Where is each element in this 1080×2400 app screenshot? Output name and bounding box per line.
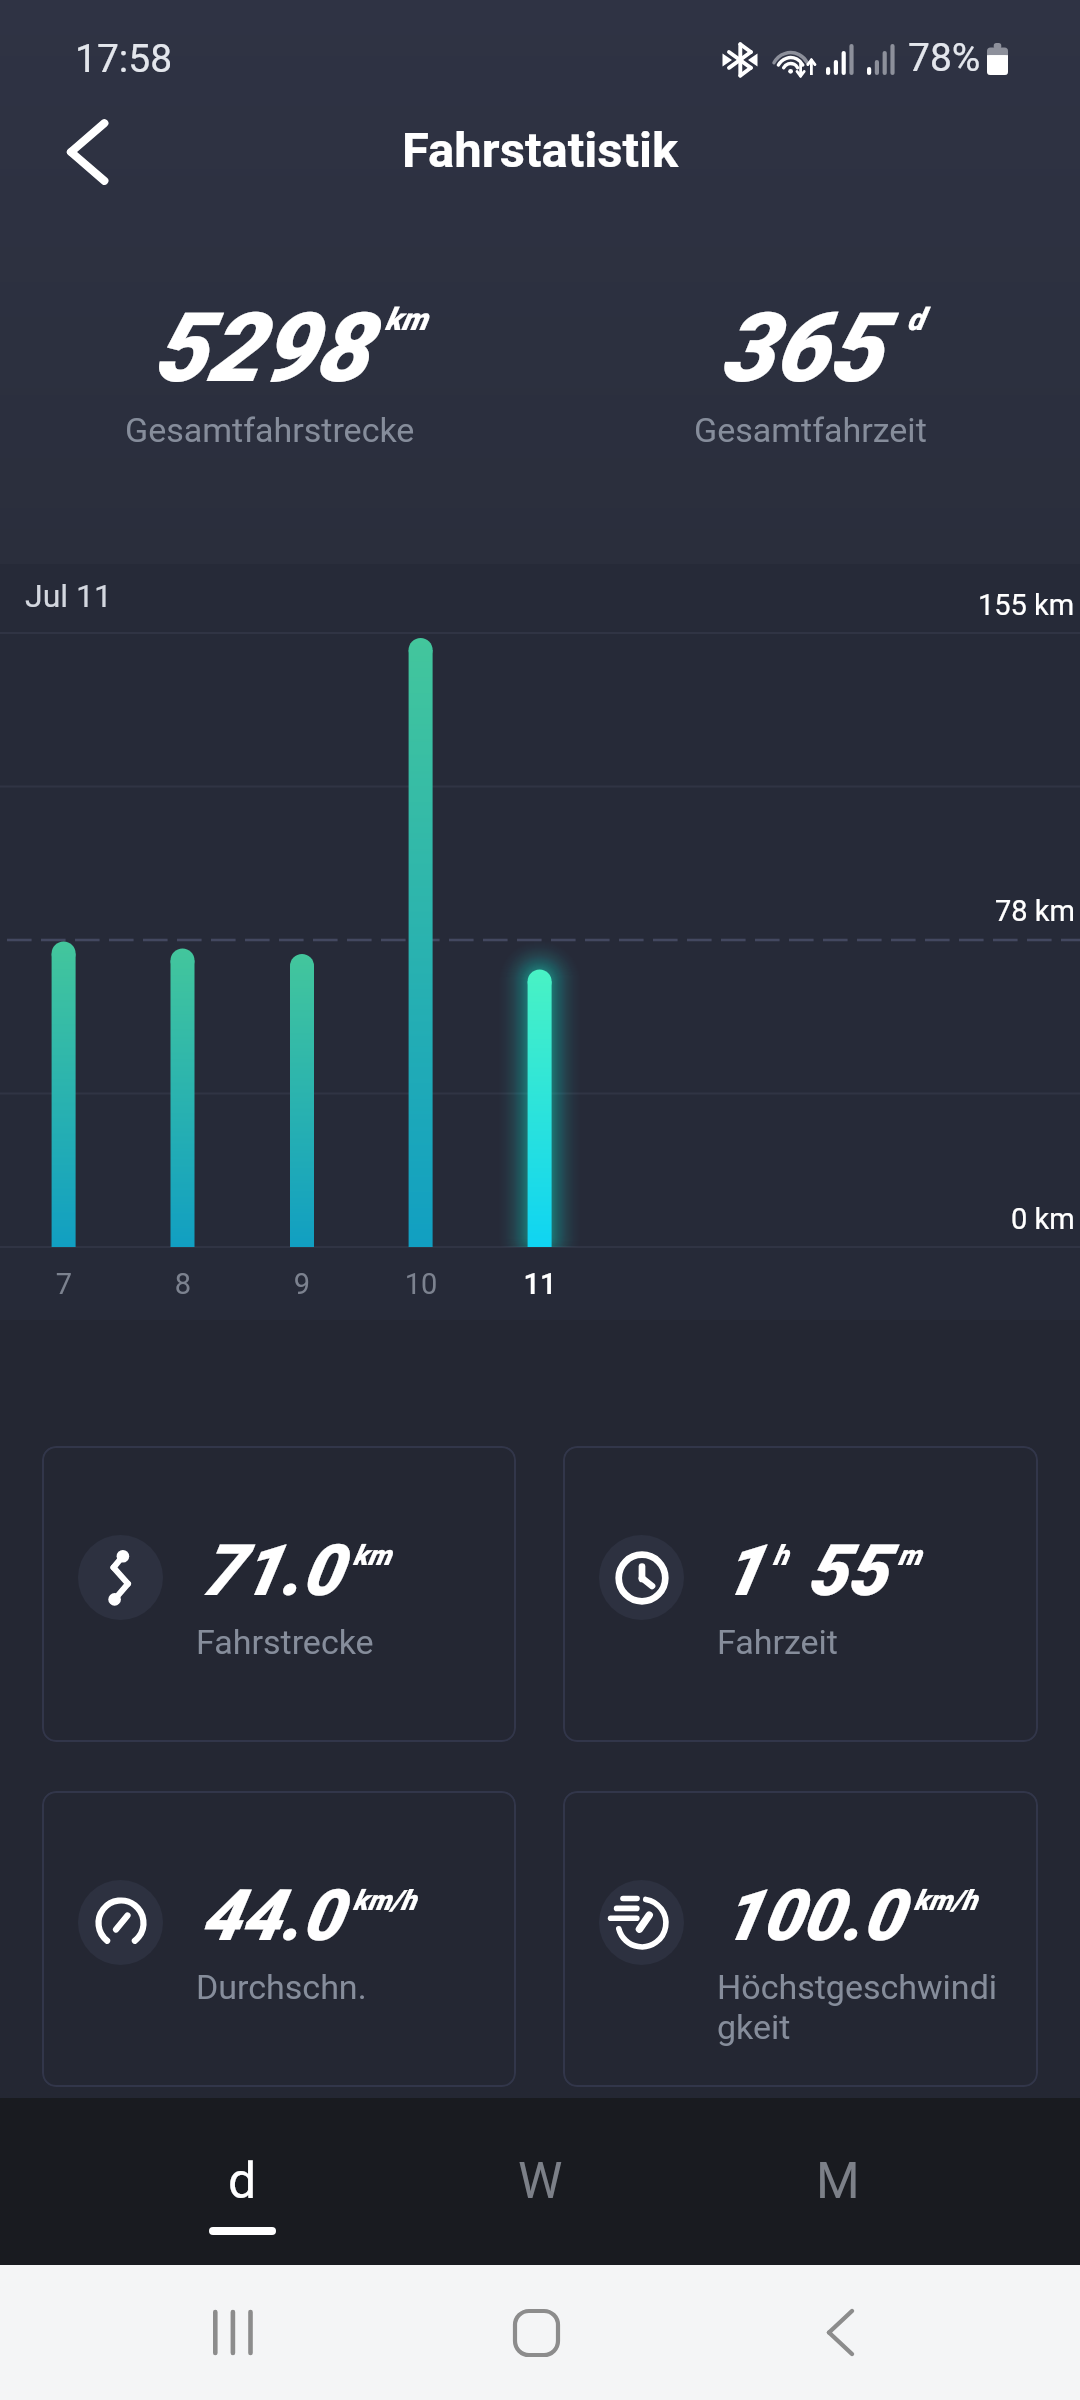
staticText: km [353,1539,392,1572]
staticText: km [385,301,428,337]
button[interactable]: W [391,2098,689,2265]
staticText: Fahrstatistik [402,122,679,179]
staticText: W [518,2152,563,2211]
staticText: Jul 11 [25,577,112,615]
button[interactable]: M [689,2098,987,2265]
staticText: h [773,1539,789,1572]
staticText: m [898,1539,922,1572]
staticText: 78% [908,35,981,81]
button[interactable]: 100.0 [563,1791,1038,2087]
staticText: Höchstgeschwindigkeit [717,1967,1005,2047]
staticText: 8 [143,1267,223,1301]
staticText: 10 [381,1267,461,1301]
button[interactable]: Back [36,114,112,190]
button[interactable]: Recent apps [0,2265,360,2400]
staticText: 17:58 [75,36,173,82]
button[interactable]: d [93,2098,391,2265]
staticText: d [228,2152,257,2211]
staticText: 55 [807,1529,887,1612]
staticText: Durchschn. [196,1967,484,2007]
staticText: M [816,2152,860,2211]
staticText: km/h [353,1884,417,1917]
staticText: km/h [914,1884,978,1917]
staticText: 7 [24,1267,104,1301]
button[interactable]: Home [360,2265,720,2400]
staticText: 100.0 [722,1874,903,1957]
staticText: 44.0 [201,1874,342,1957]
staticText: Gesamtfahrzeit [694,410,927,450]
button[interactable]: 71.0 [42,1446,516,1742]
staticText: 11 [500,1267,580,1301]
staticText: 155 km [978,588,1075,622]
staticText: Fahrzeit [717,1622,1005,1662]
staticText: 1 [722,1529,762,1612]
staticText: 78 km [995,894,1075,928]
staticText: 365 [720,292,882,405]
button[interactable]: 44.0 [42,1791,516,2087]
button[interactable]: 1 [563,1446,1038,1742]
staticText: 5298 [153,292,369,405]
staticText: 71.0 [201,1529,342,1612]
staticText: Gesamtfahrstrecke [125,410,415,450]
staticText: d [907,301,924,337]
staticText: 9 [262,1267,342,1301]
button[interactable]: Back [720,2265,1080,2400]
staticText: Fahrstrecke [196,1622,484,1662]
staticText: 0 km [1011,1202,1075,1236]
